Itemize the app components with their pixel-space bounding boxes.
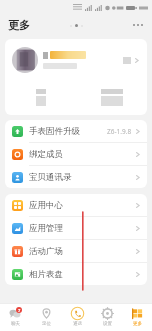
staticText: 通话 [73,321,82,327]
staticText: 设置 [103,321,112,327]
staticText: 定位 [42,321,51,327]
button[interactable] [5,39,147,81]
staticText: 活动广场 [29,246,63,257]
button[interactable]: 宝贝通讯录 [5,166,147,188]
button[interactable]: More options [129,16,147,34]
staticText: 更多 [133,321,142,327]
button[interactable] [5,89,76,106]
button[interactable]: 相片表盘 [5,263,147,285]
staticText: 聊天 [11,321,20,327]
button[interactable] [76,89,147,106]
staticText: 应用中心 [29,200,63,211]
staticText: 应用管理 [29,223,63,234]
staticText: Z6-1.9.8 [107,127,132,136]
button[interactable]: 绑定成员 [5,143,147,165]
button[interactable]: 手表固件升级 [5,120,147,142]
staticText: 绑定成员 [29,149,63,160]
staticText: 相片表盘 [29,269,63,280]
button[interactable]: 更多 [122,303,152,331]
staticText: 7 [18,308,21,313]
button[interactable]: 定位 [31,303,62,331]
staticText: 手表固件升级 [29,126,80,137]
button[interactable]: 应用管理 [5,217,147,239]
button[interactable]: 设置 [92,303,122,331]
staticText: 更多 [8,18,30,32]
button[interactable]: 应用中心 [5,194,147,216]
button[interactable]: 通话 [62,303,92,331]
staticText: 宝贝通讯录 [29,172,72,183]
button[interactable]: 活动广场 [5,240,147,262]
button[interactable]: 聊天 [0,303,31,331]
